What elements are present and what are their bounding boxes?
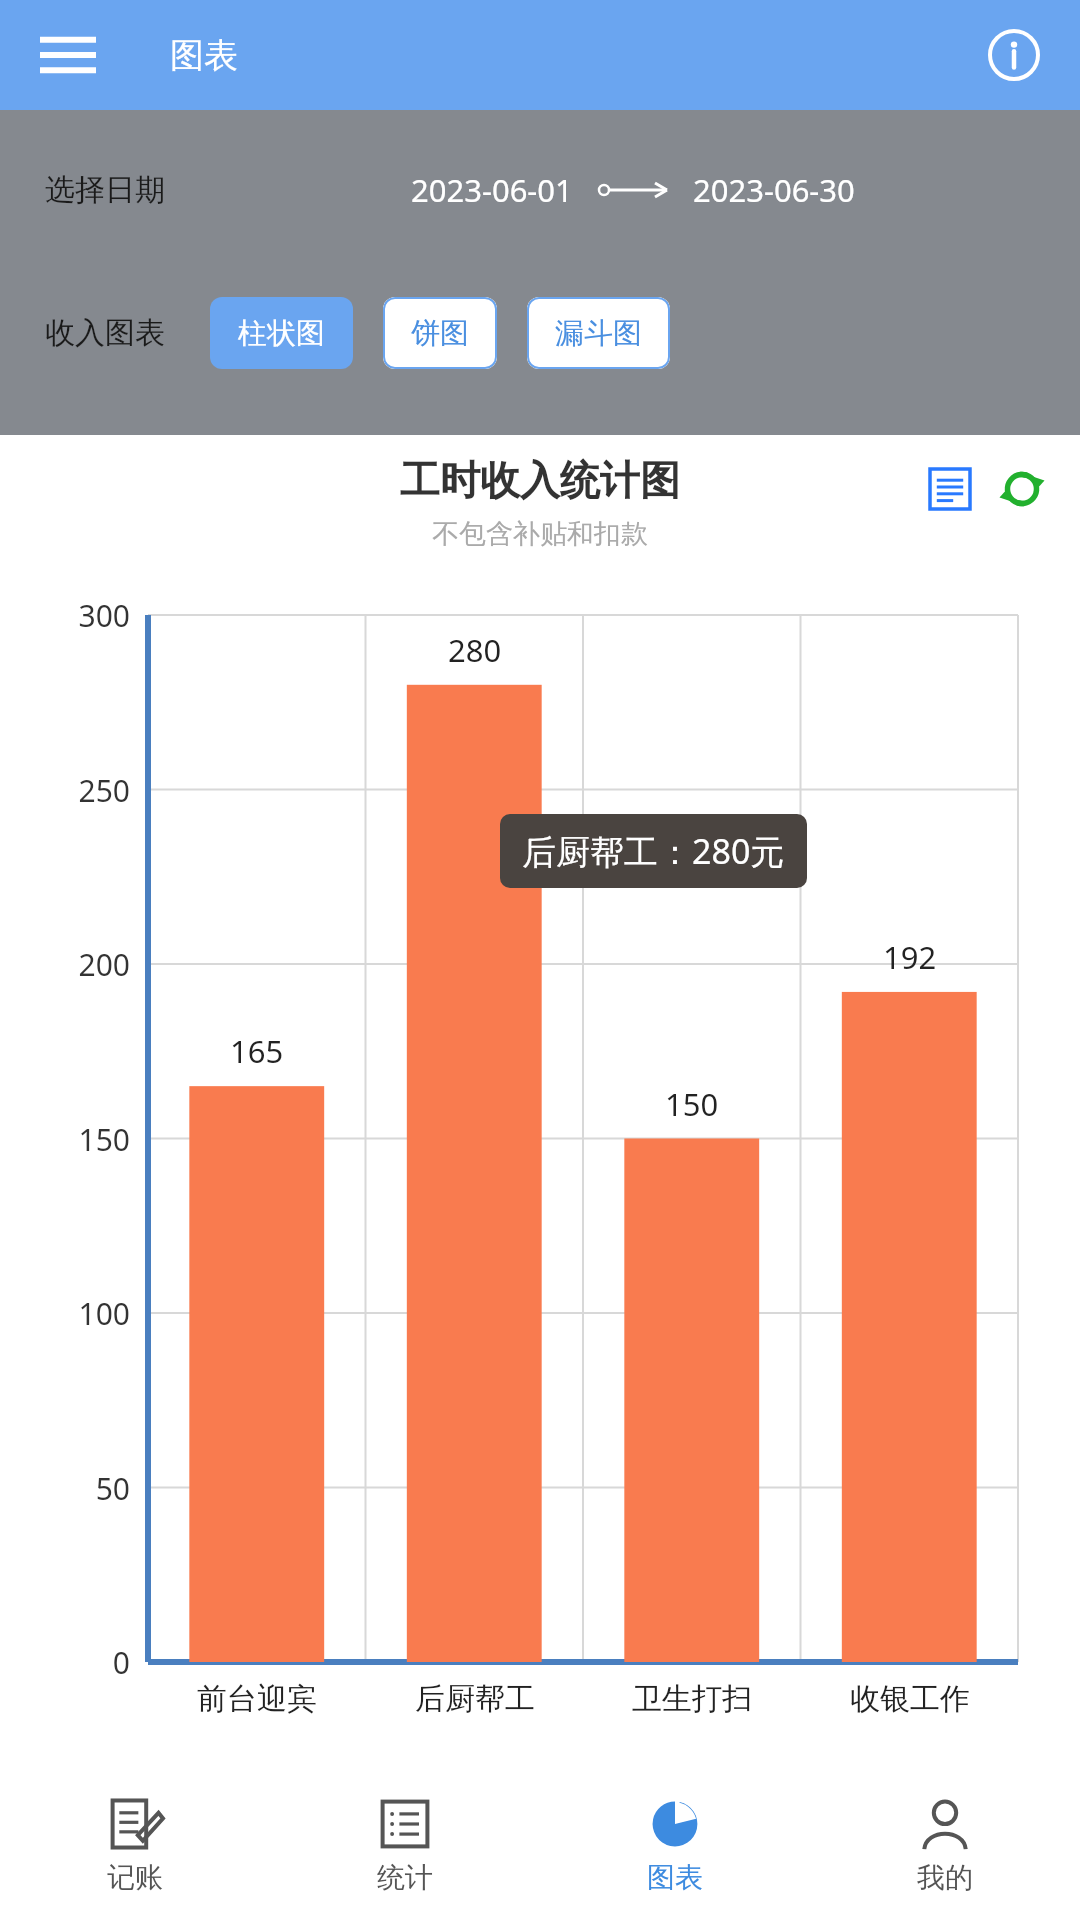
staticText: 50 [0,1468,130,1509]
staticText: 我的 [917,1860,973,1895]
staticText: 200 [0,944,130,985]
staticText: 后厨帮工：280元 [522,828,785,874]
button[interactable]: 漏斗图 [527,297,670,369]
button[interactable]: Menu [30,17,106,93]
staticText: 250 [0,770,130,811]
staticText: 收入图表 [45,314,165,352]
staticText: 选择日期 [45,171,165,209]
button[interactable]: Data list [920,459,980,519]
button[interactable]: 柱状图 [210,297,353,369]
staticText: 不包含补贴和扣款 [432,517,648,551]
button[interactable]: 图表 [540,1770,810,1920]
staticText: 记账 [107,1860,163,1895]
button[interactable]: 我的 [810,1770,1080,1920]
button[interactable]: 统计 [270,1770,540,1920]
staticText: 工时收入统计图 [400,455,680,505]
staticText: 图表 [170,34,238,77]
staticText: 280 [448,629,502,671]
staticText: 2023-06-30 [693,169,855,211]
staticText: 前台迎宾 [197,1680,317,1718]
staticText: 192 [883,936,937,978]
button[interactable]: Refresh [992,459,1052,519]
staticText: 柱状图 [238,315,325,352]
staticText: 300 [0,595,130,636]
button[interactable]: 饼图 [383,297,497,369]
button[interactable]: Info [978,19,1050,91]
staticText: 2023-06-01 [411,169,573,211]
staticText: 收银工作 [850,1680,970,1718]
staticText: 统计 [377,1860,433,1895]
staticText: 150 [0,1119,130,1160]
staticText: 165 [230,1030,284,1072]
staticText: 卫生打扫 [632,1680,752,1718]
staticText: 图表 [647,1860,703,1895]
staticText: 饼图 [411,315,469,352]
staticText: 150 [665,1083,719,1125]
staticText: 漏斗图 [555,315,642,352]
button[interactable]: 2023-06-01 [215,169,1080,211]
button[interactable]: 记账 [0,1770,270,1920]
staticText: 后厨帮工 [415,1680,535,1718]
staticText: 0 [0,1642,130,1683]
staticText: 100 [0,1293,130,1334]
